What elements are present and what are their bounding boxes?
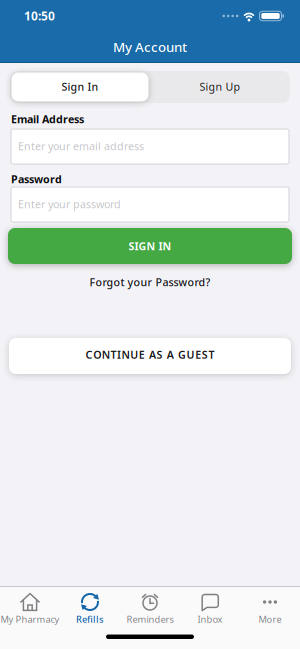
button[interactable]: More <box>240 591 300 625</box>
button[interactable]: My Pharmacy <box>0 591 60 625</box>
staticText: Reminders <box>126 613 173 625</box>
button[interactable]: Sign In <box>10 71 150 103</box>
button[interactable]: Refills <box>60 591 120 625</box>
staticText: Sign In <box>61 79 98 94</box>
button[interactable]: SIGN IN <box>0 228 300 264</box>
button[interactable]: Reminders <box>120 591 180 625</box>
staticText: 10:50 <box>24 8 55 24</box>
staticText: Password <box>11 172 62 186</box>
staticText: SIGN IN <box>128 239 171 253</box>
staticText: My Account <box>113 38 187 56</box>
staticText: More <box>258 613 281 625</box>
button[interactable]: Inbox <box>180 591 240 625</box>
staticText: My Pharmacy <box>0 613 59 625</box>
staticText: Email Address <box>11 112 84 126</box>
staticText: Forgot your Password? <box>89 275 210 289</box>
staticText: Inbox <box>197 613 222 625</box>
staticText: Sign Up <box>199 79 240 94</box>
button[interactable]: CONTINUE AS A GUEST <box>0 338 300 374</box>
staticText: Enter your password <box>18 197 121 211</box>
button[interactable]: Sign Up <box>150 71 290 103</box>
staticText: Enter your email address <box>18 139 144 153</box>
staticText: Refills <box>76 613 104 625</box>
button[interactable]: Forgot your Password? <box>89 275 210 289</box>
staticText: CONTINUE AS A GUEST <box>86 347 214 362</box>
